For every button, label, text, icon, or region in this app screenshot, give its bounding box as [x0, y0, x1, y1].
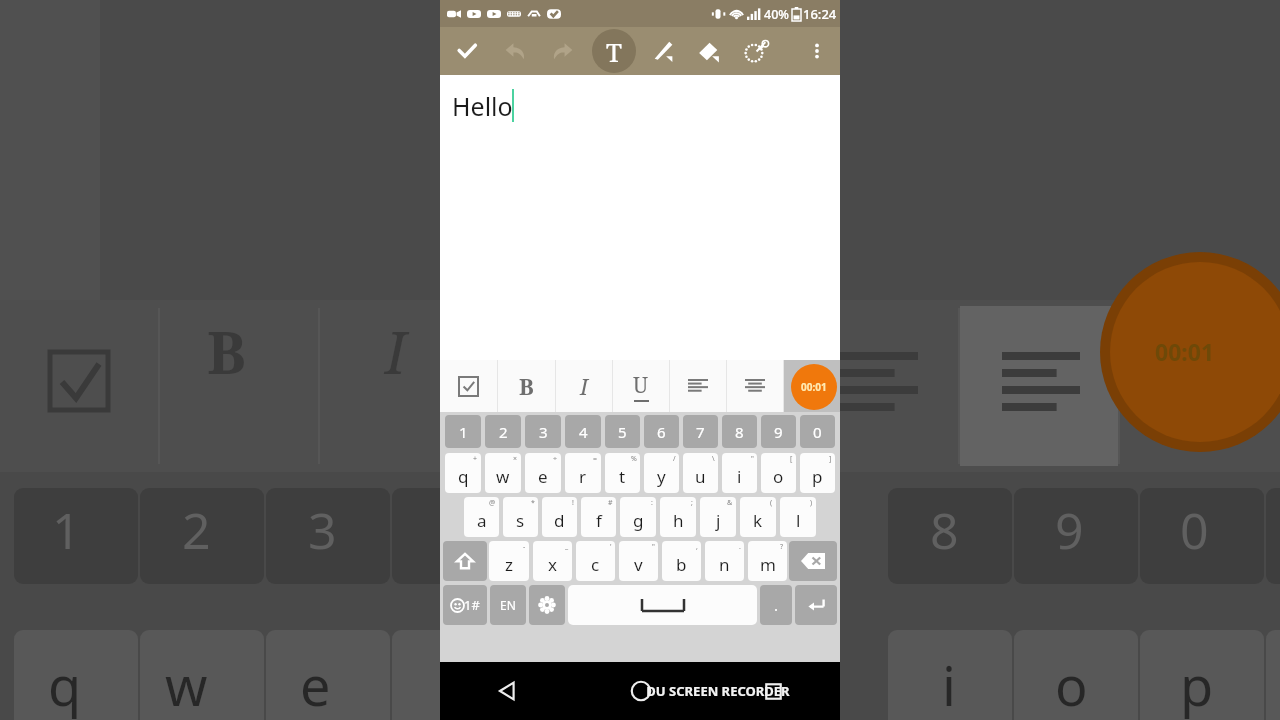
button[interactable]: - — [489, 541, 529, 581]
staticText: 3 — [308, 496, 337, 564]
button[interactable]: @ — [464, 497, 499, 537]
button[interactable]: Redo — [546, 34, 580, 68]
button[interactable]: ; — [660, 497, 696, 537]
button[interactable]: ] — [800, 453, 835, 493]
button[interactable]: / — [644, 453, 679, 493]
staticText: . — [774, 595, 779, 615]
staticText: & — [727, 498, 733, 508]
staticText: t — [619, 465, 626, 488]
button[interactable]: " — [619, 541, 658, 581]
button[interactable]: Pen — [646, 34, 680, 68]
staticText: I — [580, 371, 589, 401]
button[interactable]: + — [445, 453, 481, 493]
button[interactable]: & — [700, 497, 736, 537]
button[interactable]: Symbols — [443, 585, 487, 625]
staticText: j — [716, 509, 721, 532]
button[interactable]: 3 — [525, 415, 561, 448]
button[interactable]: Back — [440, 662, 574, 720]
staticText: f — [596, 509, 602, 532]
button[interactable]: \ — [683, 453, 718, 493]
button[interactable]: 9 — [761, 415, 796, 448]
button[interactable]: 0 — [800, 415, 835, 448]
button[interactable]: Space — [568, 585, 757, 625]
staticText: ! — [572, 498, 574, 508]
button[interactable]: Format option — [440, 360, 497, 412]
staticText: i — [942, 648, 956, 720]
button[interactable]: Recent apps — [707, 662, 840, 720]
staticText: a — [477, 509, 487, 532]
button[interactable]: Done — [450, 34, 484, 68]
staticText: , — [696, 542, 698, 552]
staticText: o — [1055, 648, 1088, 720]
button[interactable]: Text tool — [592, 29, 636, 73]
staticText: 1# — [464, 596, 480, 614]
button[interactable]: Align right — [784, 360, 840, 412]
button[interactable]: ( — [740, 497, 776, 537]
button[interactable]: _ — [533, 541, 572, 581]
button[interactable]: . — [705, 541, 744, 581]
staticText: y — [657, 465, 666, 488]
staticText: 00:01 — [801, 380, 827, 394]
button[interactable]: 1 — [445, 415, 481, 448]
button[interactable]: Recording timer — [791, 364, 837, 410]
staticText: T — [606, 34, 622, 69]
staticText: g — [633, 509, 644, 532]
button[interactable]: # — [581, 497, 616, 537]
staticText: 4 — [579, 422, 588, 442]
button[interactable]: Format option — [556, 360, 612, 412]
staticText: c — [591, 553, 600, 576]
button[interactable]: 8 — [722, 415, 757, 448]
button[interactable]: [ — [761, 453, 796, 493]
button[interactable]: Undo — [498, 34, 532, 68]
button[interactable]: More options — [800, 34, 834, 68]
staticText: 3 — [539, 422, 548, 442]
button[interactable]: 2 — [485, 415, 521, 448]
staticText: 0 — [813, 422, 822, 442]
button[interactable]: % — [605, 453, 640, 493]
staticText: + — [473, 454, 478, 464]
staticText: ? — [780, 542, 784, 552]
button[interactable]: : — [620, 497, 656, 537]
button[interactable]: Crop — [738, 34, 772, 68]
button[interactable]: 5 — [605, 415, 640, 448]
staticText: h — [673, 509, 684, 532]
button[interactable]: " — [722, 453, 757, 493]
staticText: # — [608, 498, 613, 508]
button[interactable]: Home — [574, 662, 707, 720]
button[interactable]: Eraser — [692, 34, 726, 68]
button[interactable]: * — [503, 497, 538, 537]
staticText: u — [695, 465, 706, 488]
button[interactable]: ) — [780, 497, 816, 537]
staticText: 6 — [657, 422, 666, 442]
button[interactable]: Language — [490, 585, 526, 625]
staticText: ( — [770, 498, 773, 508]
button[interactable]: Enter — [795, 585, 837, 625]
button[interactable]: × — [485, 453, 521, 493]
button[interactable]: Shift — [443, 541, 487, 581]
button[interactable]: Format option — [670, 360, 726, 412]
staticText: r — [579, 465, 587, 488]
staticText: * — [531, 498, 535, 508]
button[interactable]: ? — [748, 541, 787, 581]
staticText: e — [538, 465, 548, 488]
button[interactable]: ! — [542, 497, 577, 537]
button[interactable]: 7 — [683, 415, 718, 448]
staticText: s — [516, 509, 525, 532]
button[interactable]: 6 — [644, 415, 679, 448]
button[interactable]: ÷ — [525, 453, 561, 493]
button[interactable]: Format option — [498, 360, 555, 412]
staticText: d — [554, 509, 565, 532]
button[interactable]: Backspace — [789, 541, 837, 581]
button[interactable]: Format option — [613, 360, 669, 412]
staticText: 8 — [930, 496, 959, 564]
button[interactable]: ' — [576, 541, 615, 581]
staticText: p — [1180, 648, 1214, 720]
button[interactable]: Keyboard settings — [529, 585, 565, 625]
button[interactable]: , — [662, 541, 701, 581]
staticText: p — [812, 465, 823, 488]
button[interactable]: Period — [760, 585, 792, 625]
button[interactable]: = — [565, 453, 601, 493]
button[interactable]: Format option — [727, 360, 783, 412]
button[interactable]: 4 — [565, 415, 601, 448]
staticText: \ — [712, 454, 715, 464]
